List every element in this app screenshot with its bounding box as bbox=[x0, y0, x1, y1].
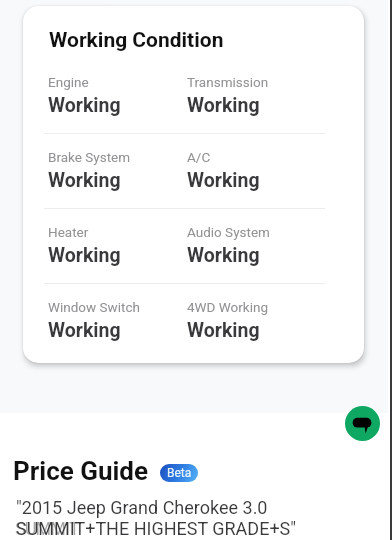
staticText: Working bbox=[187, 94, 260, 117]
staticText: Beta bbox=[167, 466, 192, 480]
button[interactable]: Price Guide bbox=[0, 456, 392, 486]
staticText: Working bbox=[187, 319, 260, 342]
staticText: Working bbox=[187, 169, 260, 192]
staticText: Transmission bbox=[187, 74, 269, 90]
staticText: Working bbox=[48, 94, 121, 117]
staticText: Window Switch bbox=[48, 299, 140, 315]
staticText: "2015 Jeep Grand Cherokee 3.0 SUMMIT+THE… bbox=[16, 497, 321, 539]
staticText: Working bbox=[187, 244, 260, 267]
staticText: Engine bbox=[48, 74, 89, 90]
staticText: Brake System bbox=[48, 149, 131, 165]
staticText: Working bbox=[48, 244, 121, 267]
button[interactable]: Working Condition bbox=[23, 6, 364, 363]
staticText: Working bbox=[48, 319, 121, 342]
button[interactable]: Beta bbox=[160, 464, 198, 482]
staticText: Audio System bbox=[187, 224, 270, 240]
staticText: Heater bbox=[48, 224, 89, 240]
staticText: 4WD Working bbox=[187, 299, 268, 315]
staticText: SUMMIT bbox=[15, 518, 79, 539]
button[interactable]: Chat bbox=[345, 406, 380, 441]
staticText: Working bbox=[48, 169, 121, 192]
staticText: Price Guide bbox=[13, 456, 149, 486]
staticText: Working Condition bbox=[49, 28, 224, 53]
staticText: A/C bbox=[187, 149, 211, 165]
